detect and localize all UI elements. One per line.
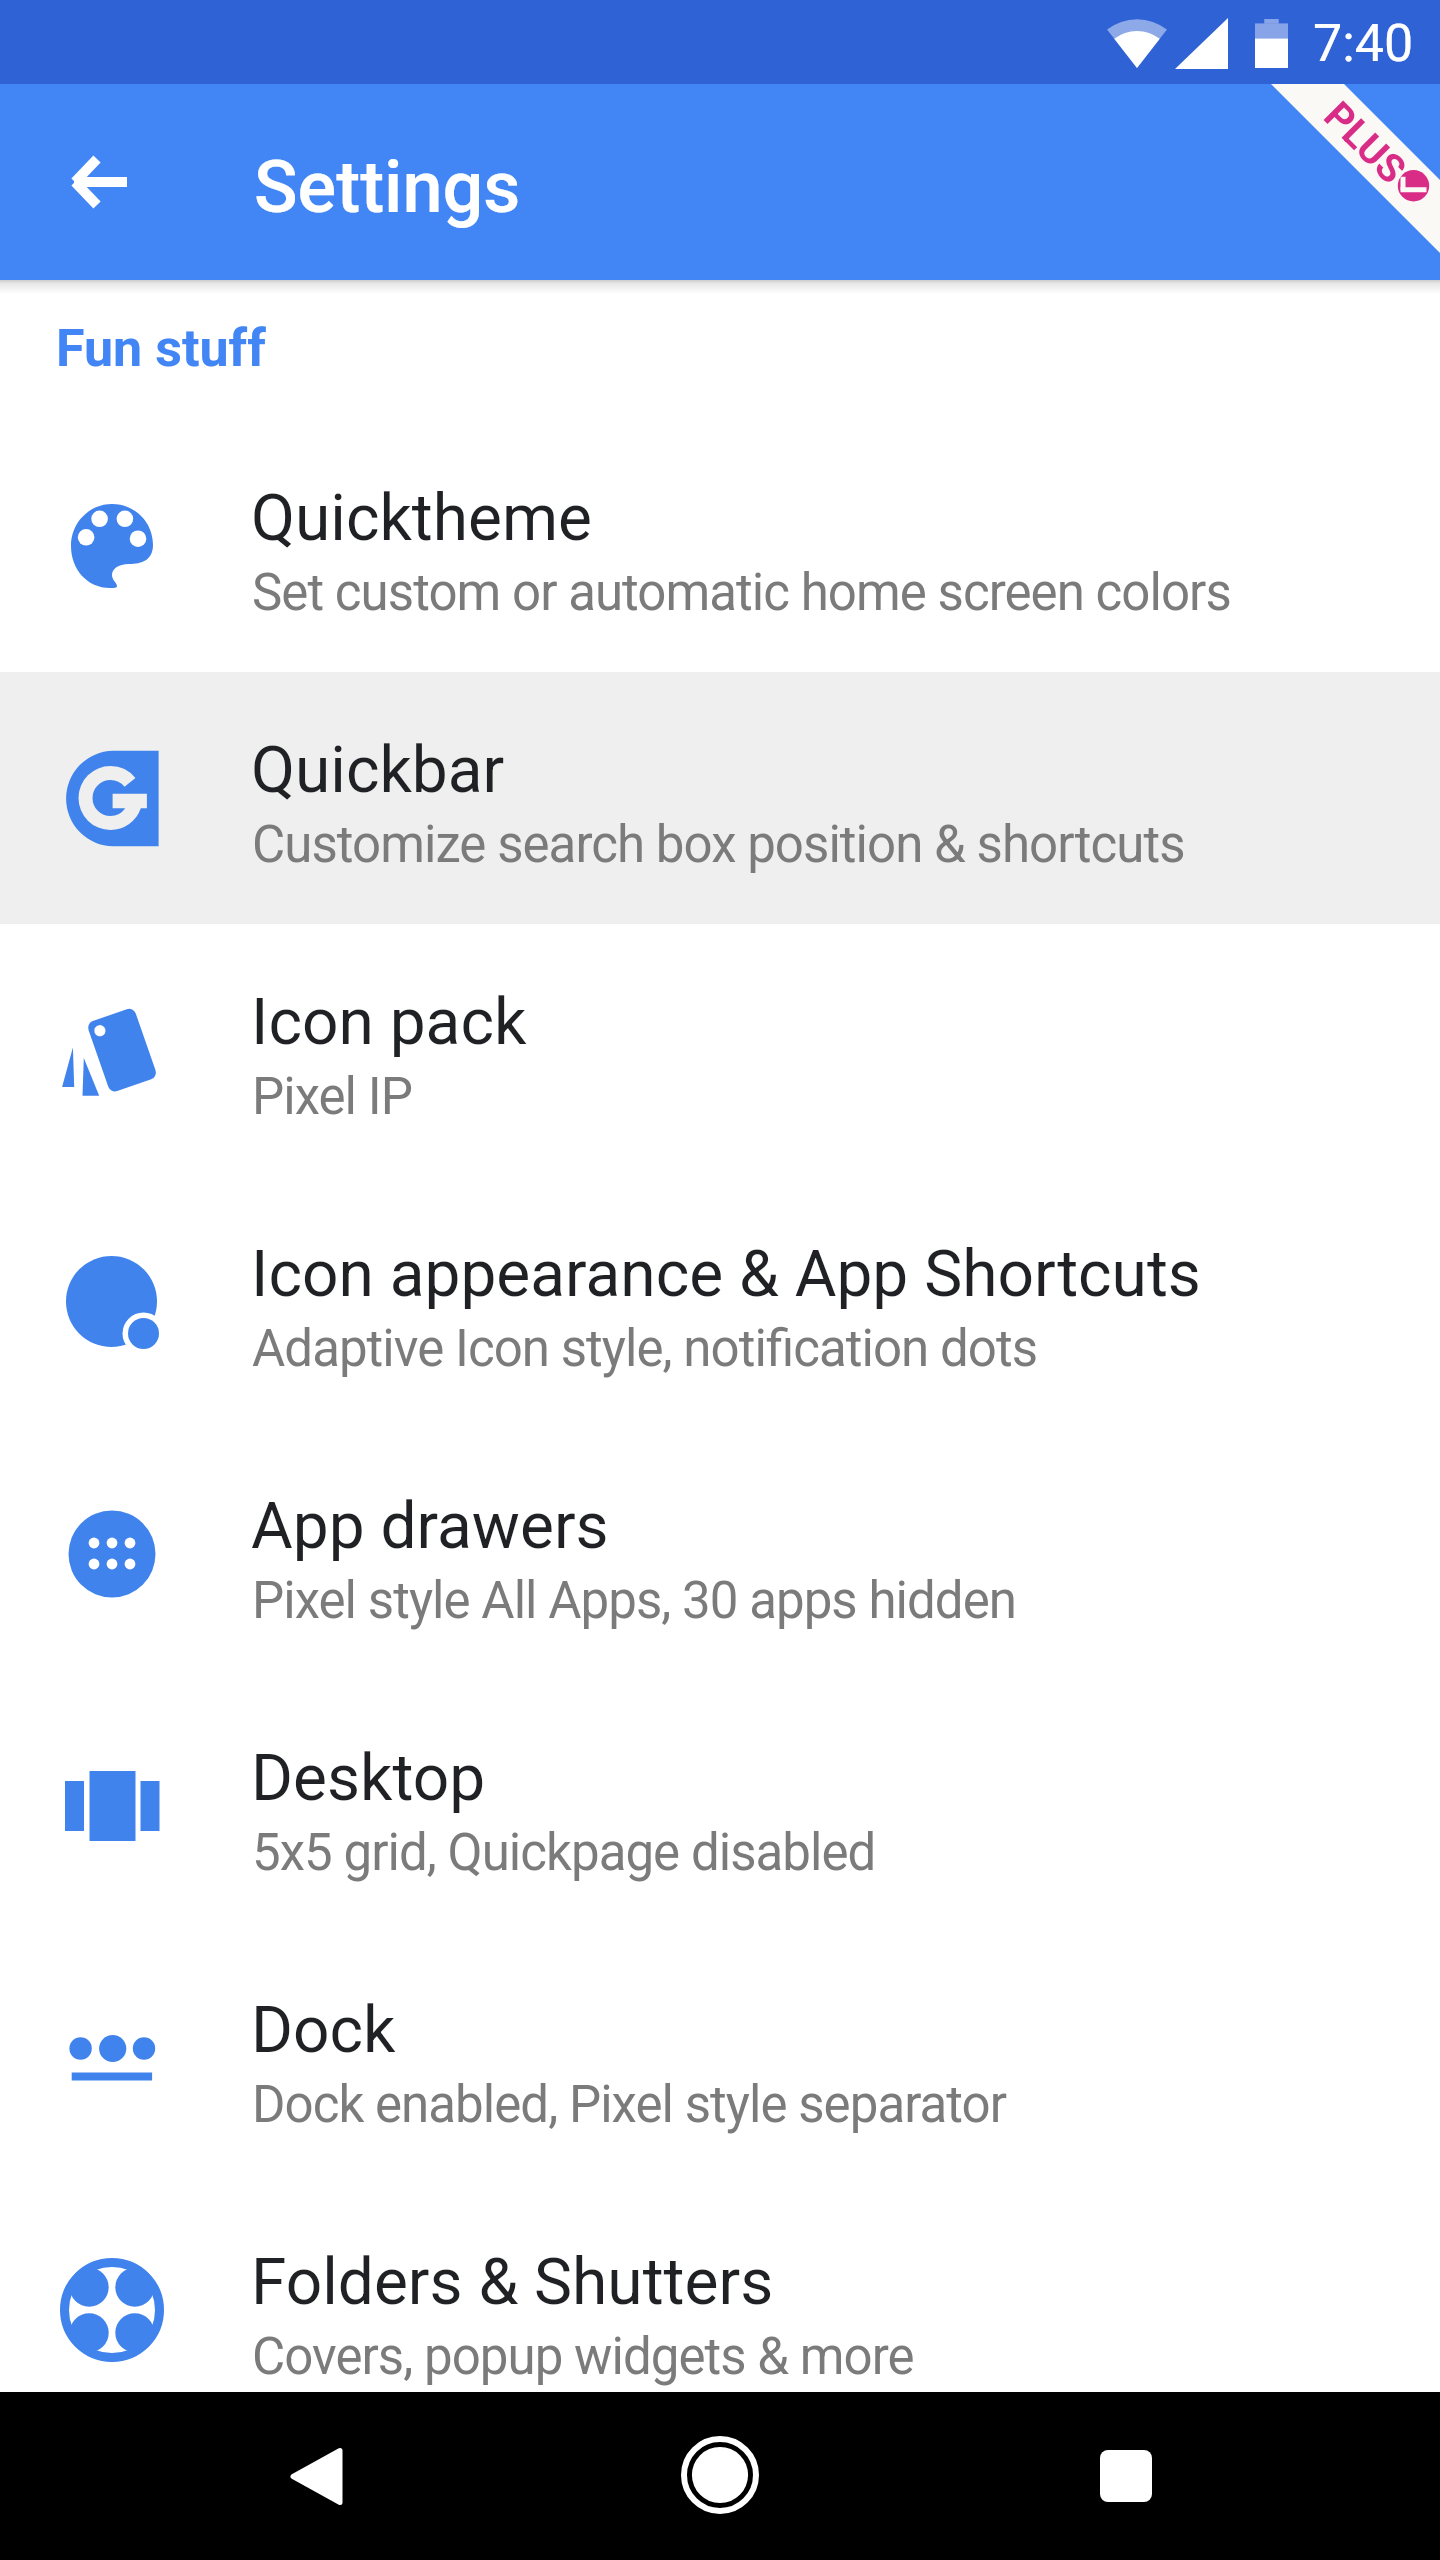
button[interactable]: Quicktheme: [0, 420, 1440, 672]
staticText: Fun stuff: [56, 318, 266, 379]
staticText: PLUS: [1315, 93, 1415, 193]
staticText: Settings: [254, 145, 521, 229]
button[interactable]: Quickbar: [0, 672, 1440, 924]
button[interactable]: Recents: [1046, 2396, 1206, 2556]
button[interactable]: Plus version: [1240, 84, 1440, 280]
button[interactable]: Back: [236, 2396, 396, 2556]
staticText: Pixel style All Apps, 30 apps hidden: [252, 1569, 1016, 1631]
button[interactable]: Back: [42, 126, 154, 238]
button[interactable]: Icon pack: [0, 924, 1440, 1176]
staticText: 7:40: [1313, 13, 1414, 74]
staticText: Covers, popup widgets & more: [252, 2325, 914, 2387]
staticText: Pixel IP: [252, 1065, 412, 1127]
staticText: Icon pack: [251, 984, 527, 1060]
staticText: Quicktheme: [251, 480, 592, 556]
button[interactable]: Dock: [0, 1932, 1440, 2184]
button[interactable]: App drawers: [0, 1428, 1440, 1680]
button[interactable]: Desktop: [0, 1680, 1440, 1932]
button[interactable]: Home: [640, 2395, 800, 2555]
staticText: Customize search box position & shortcut…: [252, 813, 1185, 875]
staticText: Adaptive Icon style, notification dots: [252, 1317, 1038, 1379]
staticText: Dock enabled, Pixel style separator: [252, 2073, 1007, 2135]
staticText: Set custom or automatic home screen colo…: [252, 561, 1231, 623]
staticText: Quickbar: [251, 732, 505, 808]
staticText: Folders & Shutters: [251, 2244, 774, 2320]
button[interactable]: Icon appearance & App Shortcuts: [0, 1176, 1440, 1428]
button[interactable]: Folders & Shutters: [0, 2184, 1440, 2392]
staticText: App drawers: [251, 1488, 609, 1564]
staticText: Icon appearance & App Shortcuts: [251, 1236, 1201, 1312]
staticText: Desktop: [251, 1740, 486, 1816]
staticText: Dock: [251, 1992, 396, 2068]
staticText: 5x5 grid, Quickpage disabled: [252, 1821, 876, 1883]
